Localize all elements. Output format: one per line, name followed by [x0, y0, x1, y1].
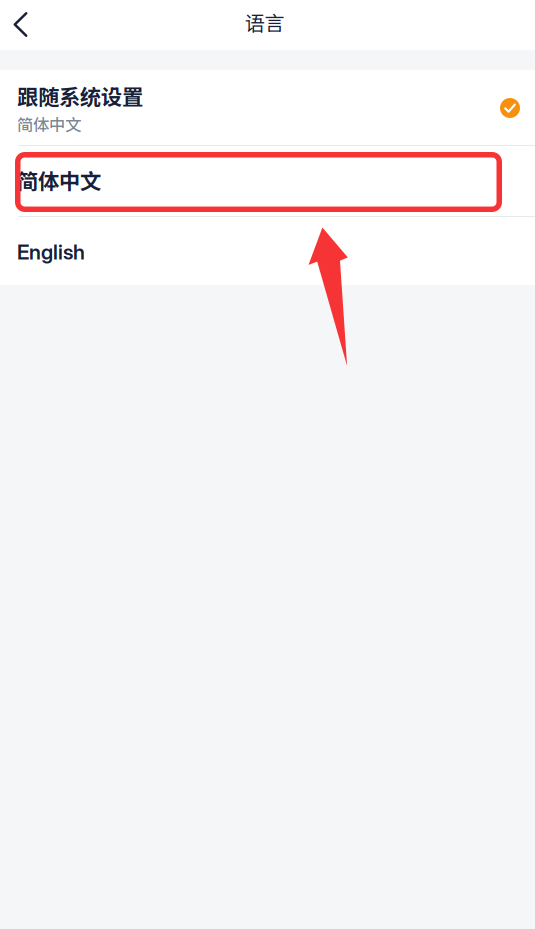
staticText: 跟随系统设置 [17, 80, 143, 111]
staticText: 简体中文 [17, 112, 81, 136]
button[interactable]: 简体中文 [0, 146, 535, 216]
staticText: English [17, 239, 85, 264]
button[interactable]: Back [0, 0, 44, 50]
button[interactable]: 跟随系统设置 [0, 70, 535, 145]
staticText: 语言 [244, 7, 284, 36]
button[interactable]: English [0, 217, 535, 285]
staticText: 简体中文 [17, 165, 101, 195]
